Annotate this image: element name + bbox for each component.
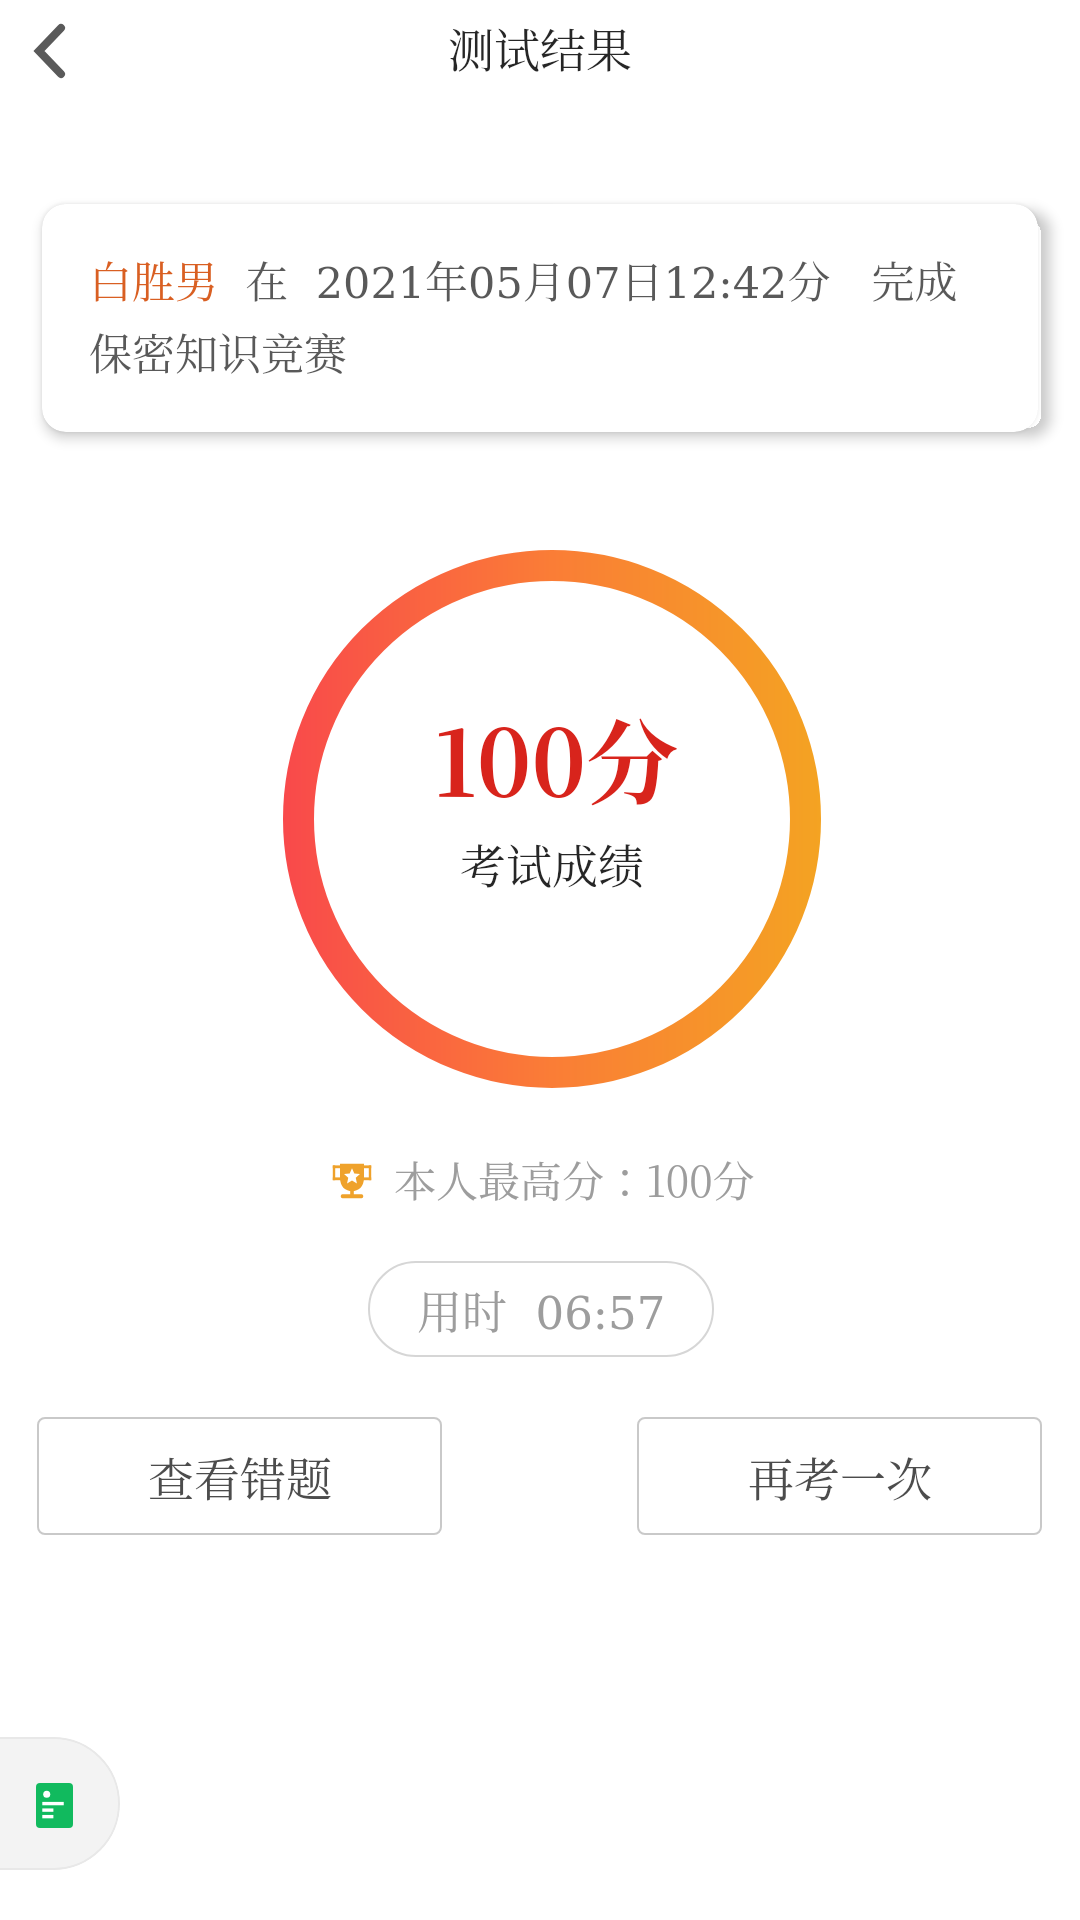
staticText: 用时 06:57	[417, 1277, 666, 1342]
staticText: 测试结果	[448, 14, 632, 80]
button[interactable]: 白胜男 在 2021年05月07日12:42分 完成 保密知识竞赛	[42, 204, 1038, 432]
button[interactable]: 查看错题	[37, 1417, 442, 1535]
button[interactable]: 用时 06:57	[368, 1261, 714, 1357]
staticText: 再考一次	[748, 1443, 932, 1509]
staticText: 白胜男 在 2021年05月07日12:42分 完成 保密知识竞赛	[89, 249, 958, 382]
staticText: 100分	[434, 691, 678, 823]
button[interactable]: 再考一次	[637, 1417, 1042, 1535]
staticText: 查看错题	[148, 1443, 332, 1509]
staticText: 考试成绩	[460, 830, 644, 896]
button[interactable]: Notes	[0, 1737, 120, 1870]
button[interactable]: Back	[0, 0, 100, 102]
staticText: 本人最高分：100分	[394, 1149, 755, 1209]
